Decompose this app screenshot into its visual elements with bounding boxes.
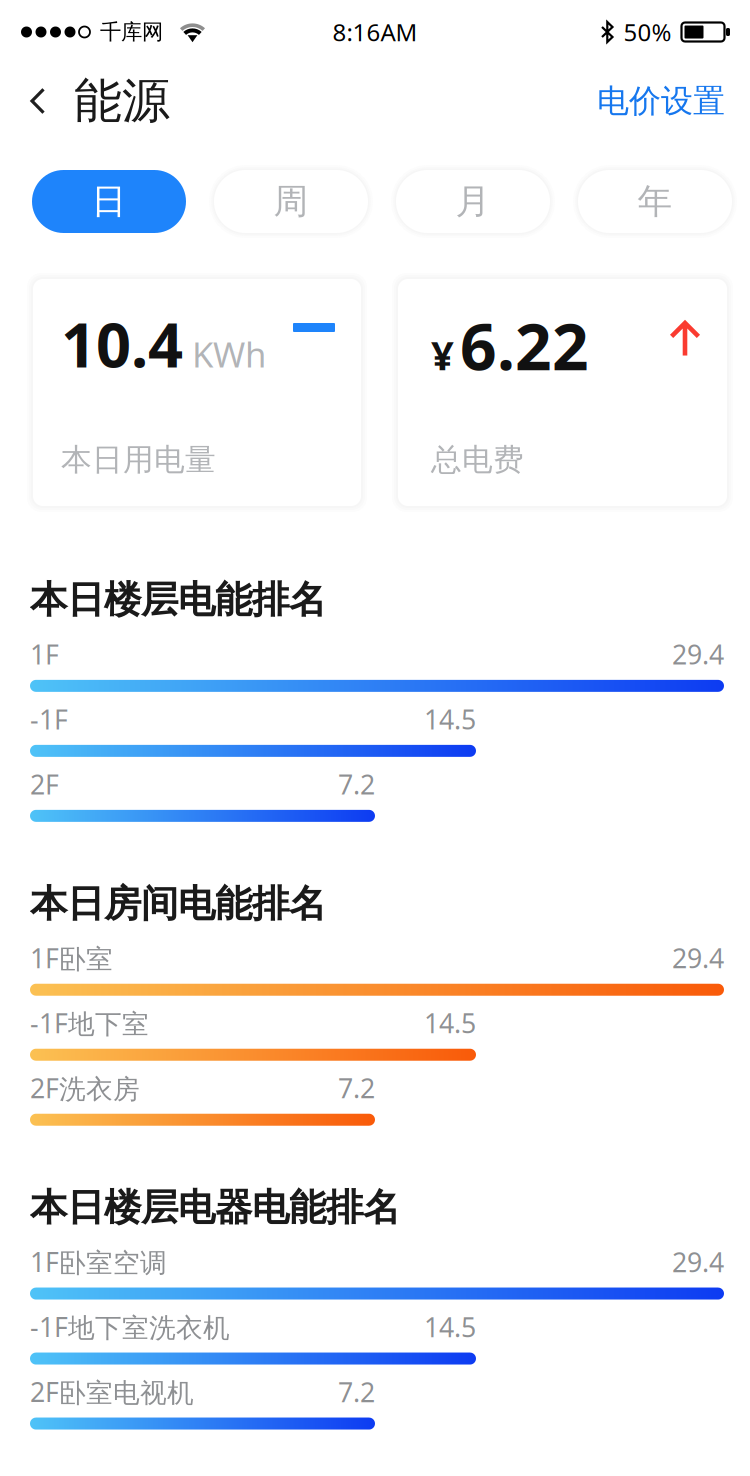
staticText: 2F [30, 766, 59, 802]
staticText: 1F卧室空调 [30, 1244, 167, 1280]
staticText: 日 [91, 180, 126, 223]
staticText: 29.4 [672, 940, 724, 976]
staticText: 年 [637, 180, 672, 223]
staticText: 本日楼层电能排名 [30, 577, 326, 623]
button[interactable]: Back [30, 64, 74, 138]
staticText: 能源 [74, 71, 170, 130]
button[interactable]: 年 [578, 170, 732, 233]
button[interactable]: 能源 [74, 64, 170, 138]
staticText: 总电费 [431, 441, 524, 479]
staticText: 14.5 [424, 1309, 476, 1344]
staticText: 1F [30, 636, 59, 672]
staticText: 10.4 [61, 303, 183, 384]
staticText: 千库网 [100, 19, 163, 45]
staticText: 本日用电量 [61, 441, 216, 479]
staticText: 50% [623, 16, 671, 48]
staticText: 2F洗衣房 [30, 1070, 140, 1106]
staticText: 29.4 [672, 1244, 724, 1279]
staticText: 29.4 [672, 636, 724, 672]
staticText: 7.2 [338, 766, 375, 802]
staticText: 电价设置 [597, 81, 725, 121]
staticText: 14.5 [424, 701, 476, 737]
button[interactable]: 电价设置 [597, 64, 725, 138]
button[interactable]: 日 [32, 170, 186, 233]
staticText: 7.2 [338, 1374, 375, 1409]
staticText: 本日楼层电器电能排名 [30, 1185, 400, 1231]
staticText: KWh [192, 331, 266, 377]
staticText: 周 [273, 180, 308, 223]
staticText: -1F地下室 [30, 1005, 149, 1041]
staticText: -1F [30, 701, 68, 737]
staticText: ¥ [431, 328, 454, 381]
button[interactable]: 周 [214, 170, 368, 233]
button[interactable]: 月 [396, 170, 550, 233]
staticText: 本日房间电能排名 [30, 881, 326, 927]
staticText: 1F卧室 [30, 940, 113, 976]
staticText: 月 [455, 180, 490, 223]
staticText: 8:16AM [332, 16, 417, 48]
staticText: 6.22 [460, 303, 589, 388]
staticText: -1F地下室洗衣机 [30, 1309, 230, 1345]
staticText: 14.5 [424, 1005, 476, 1041]
staticText: 2F卧室电视机 [30, 1374, 194, 1410]
staticText: 7.2 [338, 1070, 375, 1106]
